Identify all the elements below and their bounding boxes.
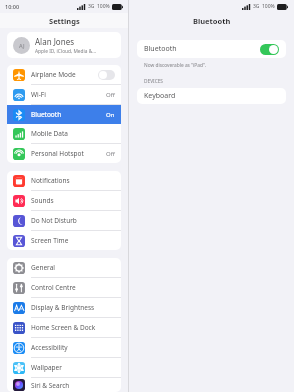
button[interactable]: Personal Hotspot — [7, 144, 121, 163]
staticText: Display & Brightness — [31, 303, 115, 312]
staticText: 10:00 — [5, 3, 20, 10]
staticText: Mobile Data — [31, 129, 115, 138]
button[interactable]: Display & Brightness — [7, 298, 121, 317]
staticText: Now discoverable as "iPad". — [144, 62, 207, 69]
button[interactable]: Accessibility — [7, 338, 121, 357]
staticText: Home Screen & Dock — [31, 323, 115, 332]
staticText: Wallpaper — [31, 363, 115, 372]
staticText: Bluetooth — [144, 44, 260, 54]
staticText: Settings — [49, 16, 80, 26]
button[interactable]: Bluetooth — [7, 105, 121, 124]
button[interactable] — [260, 44, 279, 55]
button[interactable]: Keyboard — [137, 88, 286, 104]
button[interactable]: Screen Time — [7, 231, 121, 250]
button[interactable]: Do Not Disturb — [7, 211, 121, 230]
button[interactable]: Bluetooth — [137, 40, 286, 58]
staticText: Accessibility — [31, 343, 115, 352]
staticText: On — [106, 111, 115, 119]
staticText: Keyboard — [144, 91, 176, 101]
staticText: Notifications — [31, 176, 115, 185]
staticText: Apple ID, iCloud, Media &… — [35, 48, 96, 55]
staticText: 3G — [88, 3, 95, 10]
staticText: Control Centre — [31, 283, 115, 292]
button[interactable] — [98, 70, 115, 80]
button[interactable]: Home Screen & Dock — [7, 318, 121, 337]
button[interactable]: Siri & Search — [7, 378, 121, 392]
staticText: Screen Time — [31, 236, 115, 245]
staticText: Airplane Mode — [31, 70, 98, 79]
staticText: AJ — [19, 42, 25, 49]
staticText: Wi-Fi — [31, 90, 106, 99]
staticText: Off — [106, 150, 115, 158]
staticText: Bluetooth — [31, 110, 106, 119]
staticText: Personal Hotspot — [31, 149, 106, 158]
button[interactable]: Sounds — [7, 191, 121, 210]
staticText: Sounds — [31, 196, 115, 205]
button[interactable]: Notifications — [7, 171, 121, 190]
button[interactable]: Wi-Fi — [7, 85, 121, 104]
staticText: DEVICES — [144, 78, 164, 85]
button[interactable]: Airplane Mode — [7, 65, 121, 84]
button[interactable]: Wallpaper — [7, 358, 121, 377]
staticText: 3G — [253, 3, 260, 10]
staticText: 100% — [97, 3, 110, 10]
button[interactable]: General — [7, 258, 121, 277]
button[interactable]: AJ — [7, 32, 121, 58]
staticText: Siri & Search — [31, 381, 115, 390]
staticText: Off — [106, 91, 115, 99]
button[interactable]: Control Centre — [7, 278, 121, 297]
staticText: 100% — [262, 3, 275, 10]
button[interactable]: Mobile Data — [7, 124, 121, 143]
staticText: Do Not Disturb — [31, 216, 115, 225]
staticText: Bluetooth — [193, 16, 231, 26]
staticText: General — [31, 263, 115, 272]
staticText: Alan Jones — [35, 36, 74, 47]
